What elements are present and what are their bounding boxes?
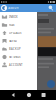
staticText: FILES xyxy=(9,23,14,27)
staticText: BACKUP xyxy=(9,47,21,51)
button[interactable]: SETTINGS xyxy=(0,53,37,61)
staticText: UPLOADS xyxy=(9,31,21,35)
button[interactable]: Back xyxy=(10,92,16,98)
button[interactable]: BACKUP xyxy=(0,45,37,53)
staticText: Account xyxy=(8,6,19,10)
button[interactable]: Account xyxy=(0,4,37,12)
button[interactable]: Recent apps xyxy=(41,93,45,97)
button[interactable]: ACCOUNT xyxy=(0,61,37,69)
staticText: ACCOUNT xyxy=(9,63,22,67)
staticText: SAVED xyxy=(9,39,17,43)
staticText: SETTINGS xyxy=(9,55,20,59)
button[interactable]: SAVED xyxy=(0,37,37,45)
button[interactable]: INBOX xyxy=(0,13,37,21)
button[interactable]: Home xyxy=(27,93,31,97)
button[interactable]: Search xyxy=(48,4,56,12)
button[interactable]: UPLOADS xyxy=(0,29,37,37)
button[interactable]: FILES xyxy=(0,21,37,29)
button[interactable]: Compose xyxy=(47,80,55,88)
staticText: INBOX xyxy=(9,15,18,19)
